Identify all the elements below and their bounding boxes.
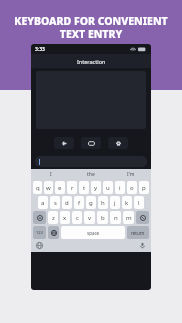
button[interactable]: r [67, 181, 77, 194]
button[interactable]: a [38, 196, 48, 209]
staticText: the [87, 171, 95, 178]
staticText: return [131, 230, 145, 236]
button[interactable]: the [71, 169, 111, 180]
staticText: 123 [36, 230, 43, 235]
staticText: r [71, 184, 74, 192]
button[interactable]: j [110, 196, 120, 209]
button[interactable]: q [33, 181, 42, 194]
button[interactable]: g [86, 196, 96, 209]
button[interactable]: m [123, 211, 134, 224]
staticText: l [138, 199, 140, 207]
button[interactable]: v [84, 211, 95, 224]
button[interactable]: f [74, 196, 84, 209]
staticText: a [41, 199, 45, 207]
staticText: w [46, 184, 51, 192]
button[interactable]: y [91, 181, 101, 194]
button[interactable]: Dictation [138, 241, 147, 250]
button[interactable]: c [72, 211, 82, 224]
staticText: n [114, 214, 118, 222]
staticText: m [126, 214, 132, 222]
button[interactable]: e [55, 181, 65, 194]
button[interactable]: Keyboard [81, 137, 101, 149]
button[interactable]: I [31, 169, 71, 180]
button[interactable]: i [115, 181, 125, 194]
button[interactable]: space [61, 226, 125, 239]
staticText: s [54, 199, 57, 207]
button[interactable]: p [139, 181, 149, 194]
staticText: h [101, 199, 105, 207]
staticText: x [63, 214, 67, 222]
staticText: v [88, 214, 92, 222]
button[interactable]: Emoji [48, 226, 59, 239]
button[interactable]: b [97, 211, 108, 224]
button[interactable]: z [48, 211, 58, 224]
staticText: d [65, 199, 69, 207]
button[interactable]: u [103, 181, 113, 194]
button[interactable]: o [127, 181, 137, 194]
button[interactable]: Backspace [136, 211, 149, 224]
staticText: c [76, 214, 79, 222]
staticText: e [58, 184, 62, 192]
button[interactable]: 123 [33, 226, 46, 239]
staticText: k [125, 199, 129, 207]
button[interactable]: h [98, 196, 108, 209]
staticText: Interaction [77, 58, 106, 65]
button[interactable]: return [127, 226, 149, 239]
staticText: j [114, 199, 116, 207]
staticText: p [142, 184, 146, 192]
staticText: z [52, 214, 55, 222]
button[interactable]: n [110, 211, 121, 224]
staticText: space [87, 230, 100, 236]
button[interactable]: Language [35, 241, 44, 250]
staticText: 3:33 [35, 46, 45, 53]
button[interactable]: d [62, 196, 72, 209]
staticText: I'm [127, 171, 135, 178]
staticText: g [89, 199, 93, 207]
button[interactable]: I'm [111, 169, 151, 180]
button[interactable]: Shift [33, 211, 46, 224]
button[interactable]: w [44, 181, 53, 194]
button[interactable]: s [50, 196, 60, 209]
staticText: u [106, 184, 110, 192]
button[interactable] [35, 156, 147, 167]
staticText: b [101, 214, 105, 222]
button[interactable]: k [122, 196, 132, 209]
staticText: y [94, 184, 98, 192]
staticText: q [36, 184, 40, 192]
button[interactable]: x [60, 211, 70, 224]
button[interactable]: l [134, 196, 144, 209]
staticText: f [78, 199, 81, 207]
staticText: o [130, 184, 134, 192]
button[interactable]: t [79, 181, 89, 194]
staticText: t [83, 184, 86, 192]
staticText: KEYBOARD FOR CONVENIENT TEXT ENTRY [14, 14, 168, 41]
staticText: I [50, 171, 52, 178]
button[interactable]: Home [108, 137, 128, 149]
button[interactable]: Back [54, 137, 74, 149]
staticText: i [119, 184, 121, 192]
